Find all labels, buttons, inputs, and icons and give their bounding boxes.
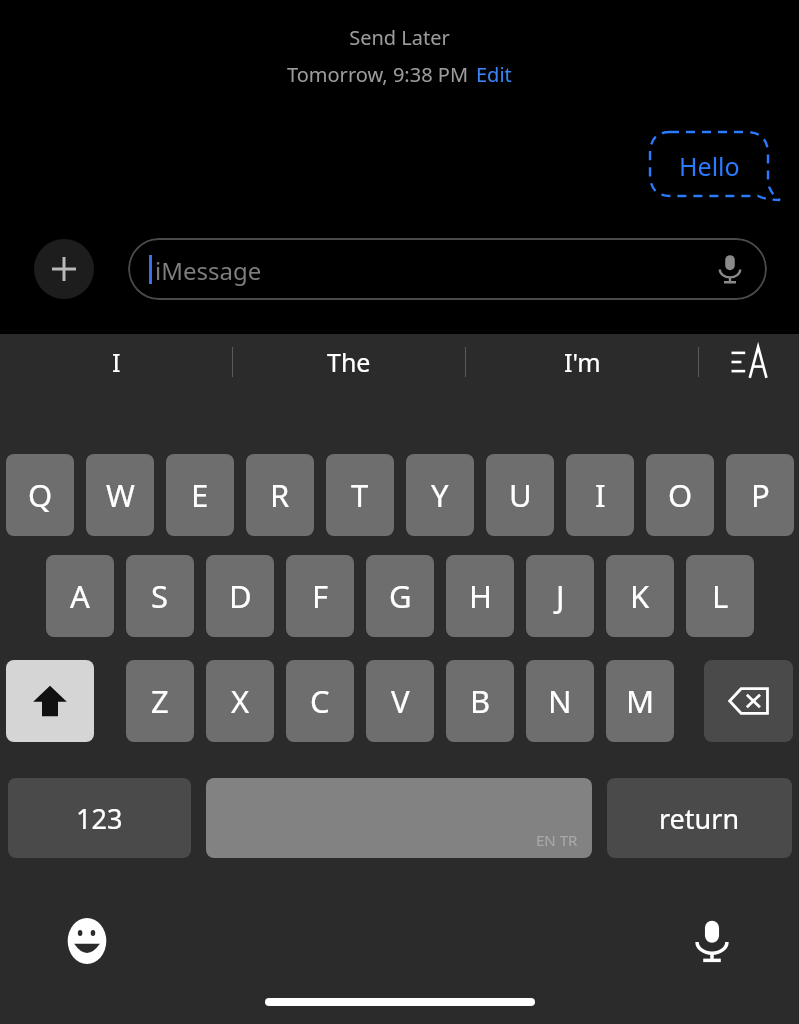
- staticText: Z: [151, 680, 169, 722]
- button[interactable]: Edit: [476, 61, 512, 88]
- staticText: D: [229, 575, 252, 617]
- staticText: W: [106, 474, 135, 516]
- button[interactable]: G: [366, 555, 434, 637]
- staticText: C: [310, 680, 330, 722]
- staticText: X: [231, 680, 250, 722]
- staticText: V: [391, 680, 410, 722]
- button[interactable]: U: [486, 454, 554, 536]
- button[interactable]: P: [726, 454, 794, 536]
- staticText: Hello: [679, 149, 740, 183]
- button[interactable]: I: [0, 334, 232, 389]
- button[interactable]: Y: [406, 454, 474, 536]
- staticText: M: [626, 680, 655, 722]
- staticText: I: [595, 474, 606, 516]
- button[interactable]: Add attachment: [34, 239, 94, 299]
- button[interactable]: Hello: [648, 130, 778, 202]
- staticText: J: [556, 575, 565, 617]
- button[interactable]: return: [607, 778, 792, 858]
- staticText: Tomorrow, 9:38 PM: [287, 61, 469, 88]
- staticText: L: [712, 575, 729, 617]
- button[interactable]: E: [166, 454, 234, 536]
- staticText: Send Later: [0, 24, 799, 51]
- staticText: I: [112, 345, 121, 379]
- staticText: Q: [28, 474, 53, 516]
- button[interactable]: Dictation: [680, 909, 744, 973]
- button[interactable]: B: [446, 660, 514, 742]
- staticText: return: [659, 800, 740, 837]
- staticText: U: [509, 474, 532, 516]
- button[interactable]: M: [606, 660, 674, 742]
- button[interactable]: F: [286, 555, 354, 637]
- button[interactable]: iMessage: [128, 238, 767, 300]
- button[interactable]: Q: [6, 454, 74, 536]
- staticText: H: [469, 575, 492, 617]
- button[interactable]: N: [526, 660, 594, 742]
- staticText: Edit: [476, 61, 512, 88]
- button[interactable]: 123: [8, 778, 191, 858]
- staticText: N: [548, 680, 572, 722]
- button[interactable]: A: [46, 555, 114, 637]
- staticText: K: [630, 575, 650, 617]
- button[interactable]: Z: [126, 660, 194, 742]
- button[interactable]: H: [446, 555, 514, 637]
- button[interactable]: Shift: [6, 660, 94, 742]
- button[interactable]: O: [646, 454, 714, 536]
- staticText: E: [191, 474, 209, 516]
- button[interactable]: D: [206, 555, 274, 637]
- staticText: P: [751, 474, 770, 516]
- button[interactable]: Emoji: [55, 909, 119, 973]
- button[interactable]: Space: [206, 778, 592, 858]
- button[interactable]: R: [246, 454, 314, 536]
- staticText: Y: [431, 474, 449, 516]
- button[interactable]: K: [606, 555, 674, 637]
- staticText: 123: [76, 800, 123, 837]
- staticText: A: [70, 575, 90, 617]
- staticText: G: [389, 575, 412, 617]
- staticText: iMessage: [155, 254, 262, 287]
- button[interactable]: Text formatting: [699, 334, 799, 389]
- staticText: B: [470, 680, 491, 722]
- button[interactable]: S: [126, 555, 194, 637]
- staticText: T: [351, 474, 369, 516]
- button[interactable]: X: [206, 660, 274, 742]
- button[interactable]: L: [686, 555, 754, 637]
- button[interactable]: J: [526, 555, 594, 637]
- staticText: S: [151, 575, 169, 617]
- staticText: EN TR: [536, 830, 578, 850]
- button[interactable]: V: [366, 660, 434, 742]
- staticText: I'm: [564, 345, 601, 379]
- staticText: The: [327, 345, 371, 379]
- button[interactable]: C: [286, 660, 354, 742]
- staticText: R: [270, 474, 290, 516]
- button[interactable]: T: [326, 454, 394, 536]
- staticText: O: [668, 474, 693, 516]
- button[interactable]: Dictate: [713, 252, 747, 286]
- button[interactable]: I'm: [466, 334, 698, 389]
- staticText: F: [312, 575, 329, 617]
- button[interactable]: Backspace: [704, 660, 793, 742]
- button[interactable]: W: [86, 454, 154, 536]
- button[interactable]: The: [233, 334, 465, 389]
- button[interactable]: I: [566, 454, 634, 536]
